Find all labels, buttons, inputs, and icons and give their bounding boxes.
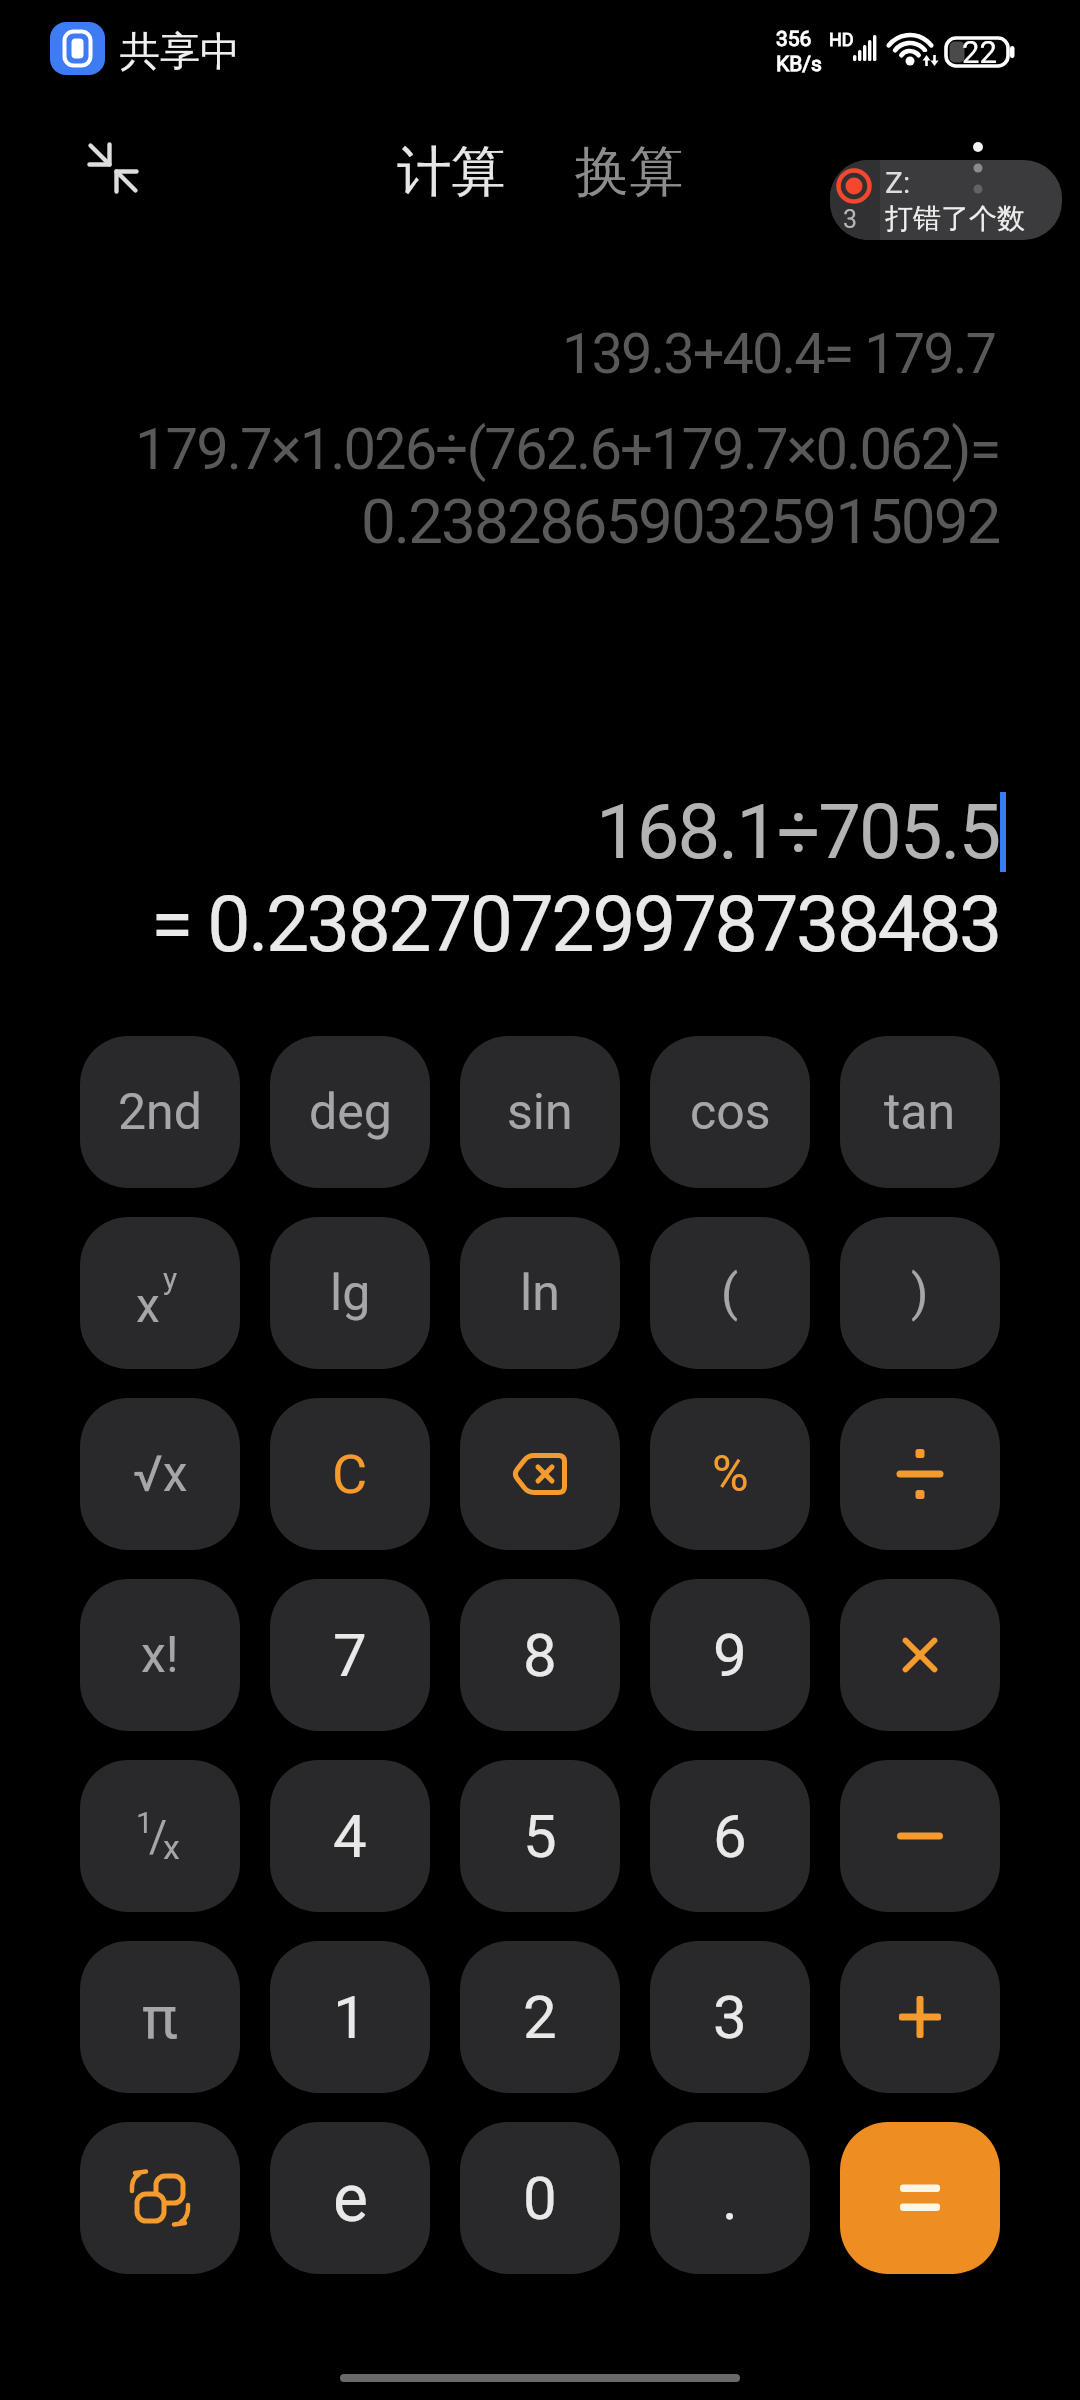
staticText: x [136,1277,160,1333]
staticText: = 0.238270729978738483 [151,880,1000,970]
button[interactable]: √x [80,1398,240,1550]
staticText: 356 [776,27,812,52]
staticText: x [163,1827,180,1867]
staticText: 0.238286590325915092 [361,485,1000,558]
button[interactable]: % [650,1398,810,1550]
staticText: x! [141,1626,179,1685]
button[interactable]: 换算 [575,138,683,202]
staticText: 22 [962,34,997,70]
staticText: Z: [885,165,911,200]
staticText: π [142,1982,178,2052]
button[interactable]: tan [840,1036,1000,1188]
staticText: 2 [523,1982,557,2052]
staticText: sin [507,1083,573,1142]
button[interactable]: ln [460,1217,620,1369]
staticText: 9 [713,1620,747,1690]
staticText: 换算 [575,138,683,202]
button[interactable]: deg [270,1036,430,1188]
button[interactable]: 1 [80,1760,240,1912]
button[interactable]: e [270,2122,430,2274]
button[interactable]: 计算 [397,138,505,202]
button[interactable]: C [270,1398,430,1550]
staticText: 3 [843,205,858,234]
button[interactable]: 1 [270,1941,430,2093]
staticText: ( [721,1264,739,1323]
staticText: tan [884,1083,956,1142]
button[interactable]: 5 [460,1760,620,1912]
button[interactable] [460,1398,620,1550]
staticText: KB/s [776,52,822,77]
staticText: 0 [523,2163,557,2233]
button[interactable]: 3 [830,160,1062,240]
button[interactable] [840,1398,1000,1550]
staticText: ln [520,1264,560,1323]
staticText: 6 [713,1801,747,1871]
button[interactable]: 7 [270,1579,430,1731]
staticText: C [332,1443,368,1506]
staticText: 共享中 [120,26,240,76]
button[interactable]: 3 [650,1941,810,2093]
staticText: 计算 [397,138,505,202]
button[interactable]: 8 [460,1579,620,1731]
staticText: 5 [523,1801,557,1871]
button[interactable]: 9 [650,1579,810,1731]
button[interactable] [840,1579,1000,1731]
button[interactable] [840,1941,1000,2093]
staticText: . [722,2163,738,2233]
staticText: √x [133,1445,188,1504]
staticText: HD [829,29,854,50]
staticText: 139.3+40.4= 179.7 [562,321,995,387]
staticText: deg [309,1083,392,1142]
staticText: 168.1÷705.5 [596,787,1000,876]
staticText: / [149,1811,168,1863]
button[interactable]: ( [650,1217,810,1369]
staticText: 7 [333,1620,367,1690]
button[interactable]: ) [840,1217,1000,1369]
staticText: y [163,1261,178,1296]
button[interactable]: 4 [270,1760,430,1912]
button[interactable]: 2nd [80,1036,240,1188]
staticText: 8 [523,1620,557,1690]
button[interactable]: 2 [460,1941,620,2093]
button[interactable]: x! [80,1579,240,1731]
staticText: 3 [713,1982,747,2052]
staticText: 1 [136,1805,153,1840]
button[interactable]: 0 [460,2122,620,2274]
button[interactable]: lg [270,1217,430,1369]
staticText: e [333,2160,368,2237]
staticText: 2nd [118,1083,202,1142]
button[interactable]: sin [460,1036,620,1188]
button[interactable] [80,2122,240,2274]
staticText: lg [330,1264,371,1323]
button[interactable] [840,1760,1000,1912]
staticText: 1 [333,1982,367,2052]
staticText: 4 [333,1801,367,1871]
staticText: cos [690,1083,771,1142]
button[interactable]: π [80,1941,240,2093]
button[interactable]: x [80,1217,240,1369]
staticText: % [712,1445,749,1504]
staticText: 179.7×1.026÷(762.6+179.7×0.062)= [135,415,1000,483]
button[interactable]: . [650,2122,810,2274]
staticText: 打错了个数 [885,201,1025,236]
button[interactable]: cos [650,1036,810,1188]
button[interactable] [840,2122,1000,2274]
button[interactable]: 6 [650,1760,810,1912]
staticText: ) [911,1264,929,1323]
button[interactable] [75,130,150,205]
